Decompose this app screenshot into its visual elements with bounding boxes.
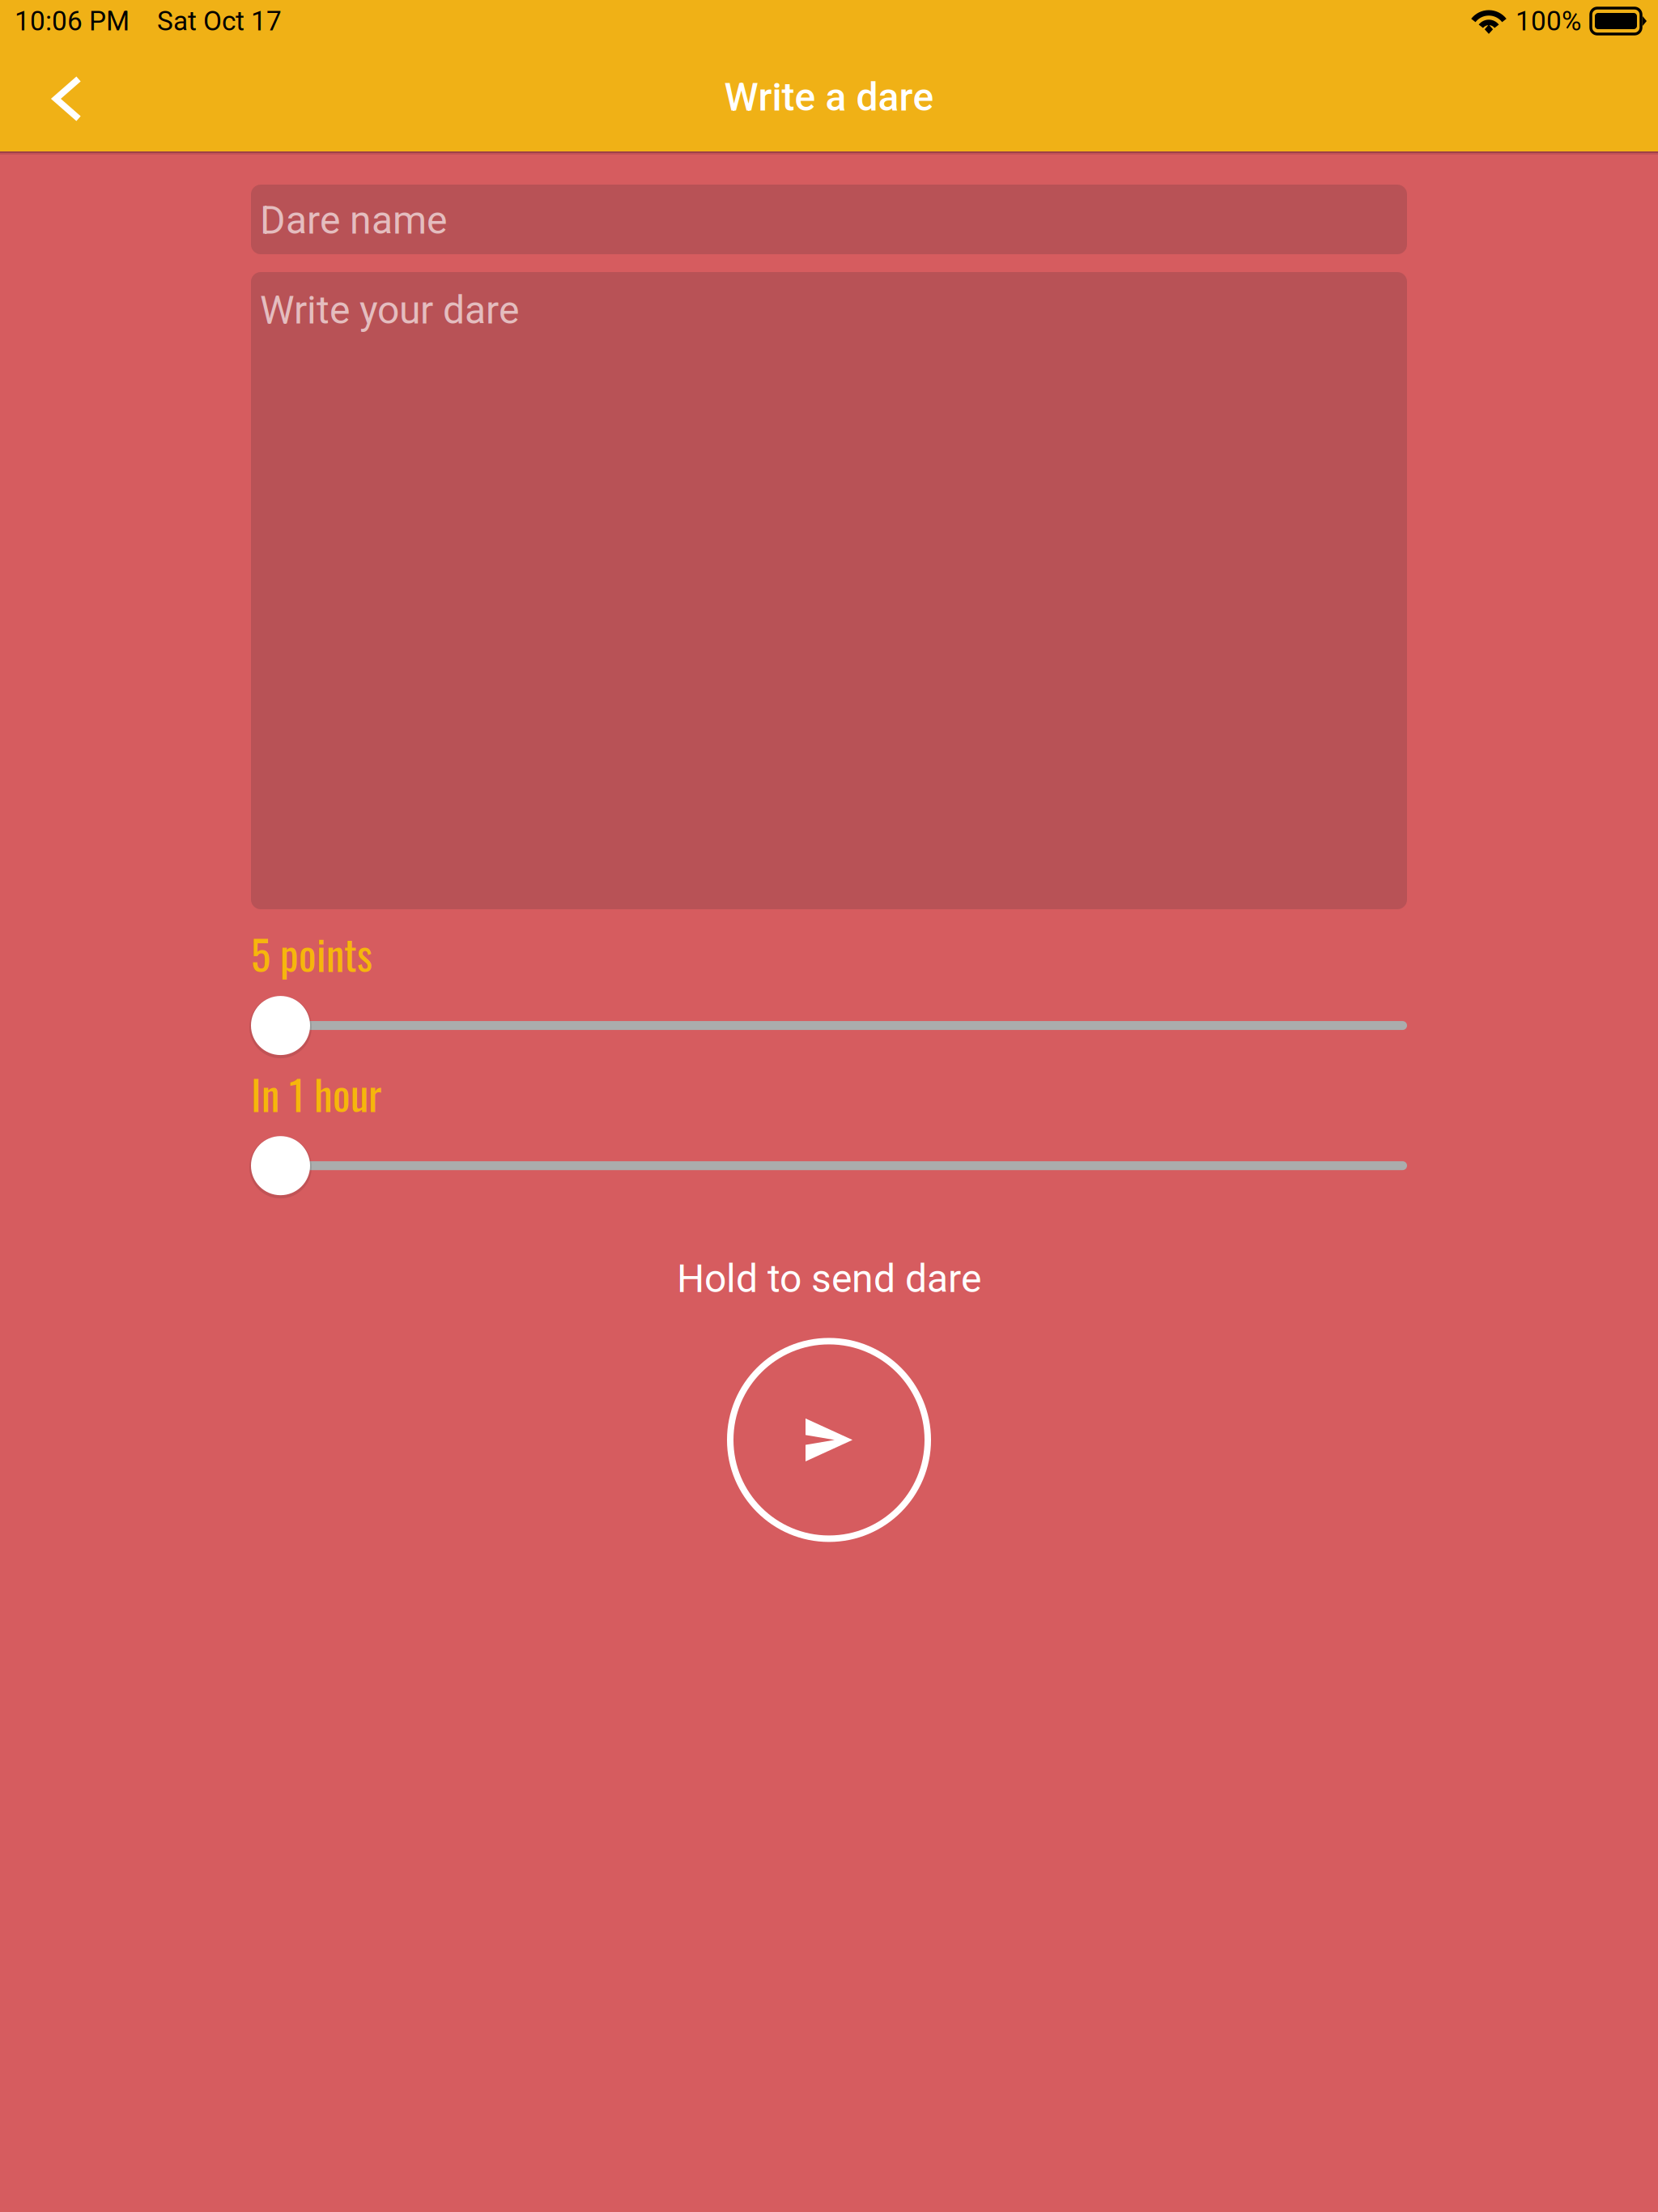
staticText: Sat Oct 17 (157, 5, 282, 37)
staticText: Dare name (260, 198, 447, 243)
button[interactable]: 5 points (251, 996, 1407, 1055)
staticText: Hold to send dare (677, 1256, 981, 1301)
button[interactable]: Write your dare (251, 272, 1407, 909)
staticText: 100% (1516, 5, 1581, 37)
button[interactable]: Back (0, 42, 81, 123)
button[interactable]: In 1 hour (251, 1136, 1407, 1195)
staticText: 10:06 PM (15, 5, 130, 37)
staticText: In 1 hour (251, 1063, 381, 1124)
button[interactable]: Dare name (251, 185, 1407, 254)
staticText: 5 points (251, 923, 372, 984)
staticText: Write your dare (260, 287, 519, 333)
staticText: Write a dare (724, 74, 934, 120)
button[interactable]: Hold to send dare (251, 1256, 1407, 1542)
